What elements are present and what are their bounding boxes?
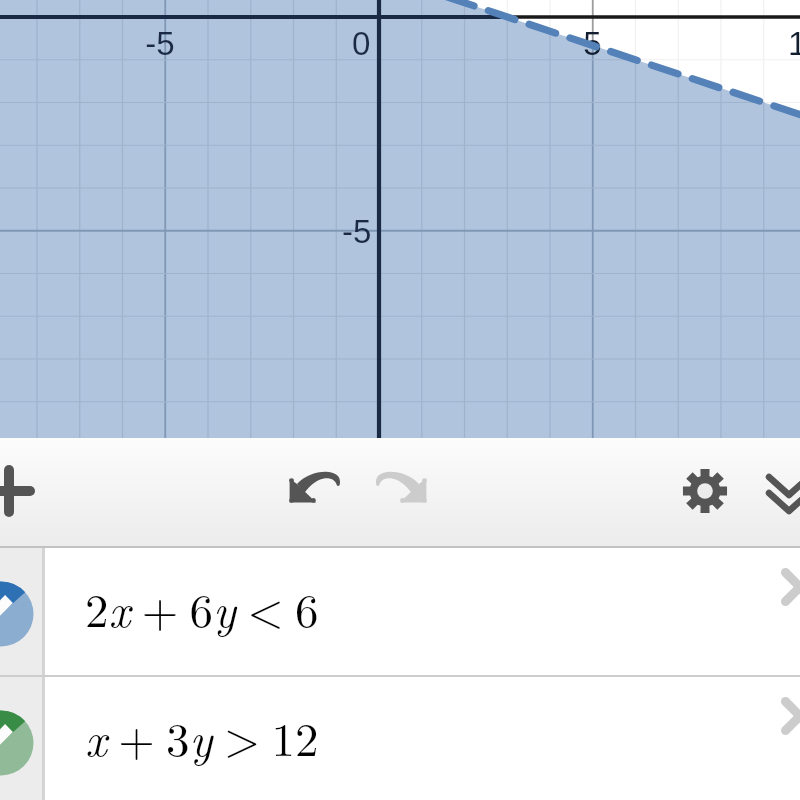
button[interactable]: Redo (362, 458, 438, 518)
button[interactable]: Toggle graph (0, 548, 42, 677)
button[interactable]: Delete expression (771, 558, 800, 616)
staticText: x + 3y > 12 (85, 703, 319, 770)
button[interactable]: x + 3y > 12 (45, 677, 800, 800)
button[interactable]: Settings (667, 453, 743, 529)
button[interactable]: 2x + 6y < 6 (45, 548, 800, 677)
button[interactable]: Collapse list (751, 465, 800, 541)
button[interactable]: Undo (278, 458, 354, 518)
button[interactable]: Delete expression (771, 687, 800, 745)
button[interactable]: Graph paper (0, 0, 800, 438)
button[interactable]: Toggle graph (0, 677, 42, 800)
staticText: 2x + 6y < 6 (85, 574, 319, 641)
button[interactable]: Add expression (0, 451, 49, 531)
